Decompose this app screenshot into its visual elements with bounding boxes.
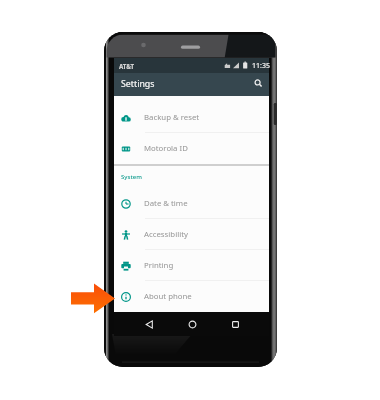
button[interactable]: Recent apps — [224, 313, 246, 335]
button[interactable]: Motorola ID — [114, 133, 269, 164]
button[interactable]: Backup & reset — [114, 102, 269, 133]
button[interactable]: About phone — [114, 281, 269, 312]
button[interactable]: Back — [138, 313, 160, 335]
staticText: Date & time — [144, 198, 188, 209]
staticText: Accessibility — [144, 229, 188, 240]
button[interactable]: Accessibility — [114, 219, 269, 250]
staticText: System — [121, 173, 142, 181]
staticText: Backup & reset — [144, 112, 200, 123]
staticText: Printing — [144, 260, 174, 271]
staticText: AT&T — [119, 62, 135, 70]
staticText: About phone — [144, 291, 192, 302]
button[interactable]: Printing — [114, 250, 269, 281]
button[interactable]: Date & time — [114, 188, 269, 219]
button[interactable]: Search — [249, 74, 267, 92]
button[interactable]: Home — [181, 313, 203, 335]
staticText: Motorola ID — [144, 143, 188, 154]
staticText: Settings — [121, 78, 155, 90]
staticText: 11:35 — [252, 61, 270, 71]
